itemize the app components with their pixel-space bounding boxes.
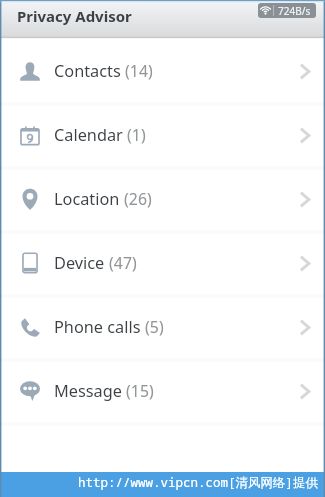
button[interactable]: Calendar (1) xyxy=(0,103,325,167)
staticText: (5) xyxy=(141,316,164,338)
staticText: Privacy Advisor xyxy=(17,6,132,26)
staticText: Message xyxy=(54,380,122,402)
staticText: (1) xyxy=(123,124,146,146)
staticText: Phone calls xyxy=(54,316,141,338)
staticText: (26) xyxy=(120,188,152,210)
button[interactable]: Phone calls (5) xyxy=(0,295,325,359)
staticText: (14) xyxy=(121,60,153,82)
button[interactable]: Contacts (14) xyxy=(0,39,325,103)
staticText: Location xyxy=(54,188,120,210)
button[interactable]: Message (15) xyxy=(0,359,325,423)
button[interactable]: Network speed 724B/s xyxy=(258,3,316,18)
staticText: Calendar xyxy=(54,124,123,146)
other: Wi-Fi connected xyxy=(258,3,273,18)
staticText: http://www.vipcn.com[清风网络]提供 xyxy=(78,474,319,491)
staticText: (15) xyxy=(122,380,154,402)
button[interactable]: Location (26) xyxy=(0,167,325,231)
staticText: (47) xyxy=(105,252,137,274)
button[interactable]: Device (47) xyxy=(0,231,325,295)
staticText: Contacts xyxy=(54,60,121,82)
staticText: Device xyxy=(54,252,105,274)
staticText: 724B/s xyxy=(278,4,311,18)
